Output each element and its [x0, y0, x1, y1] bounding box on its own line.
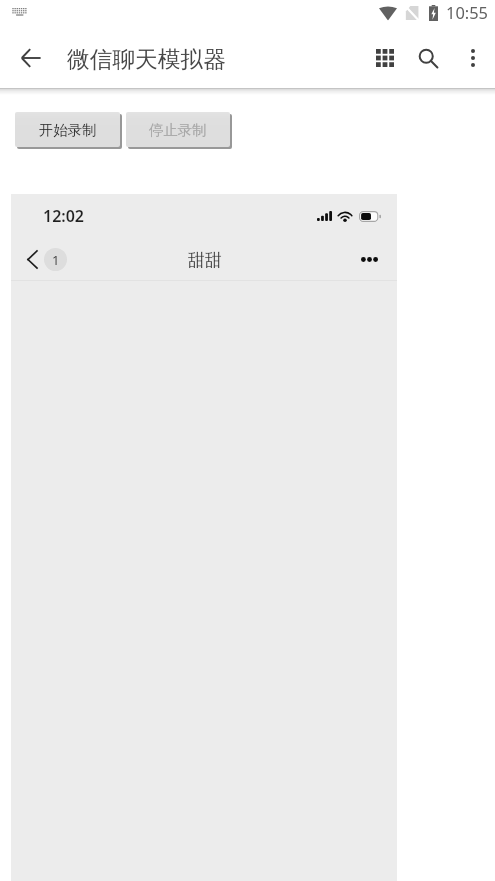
- staticText: 开始录制: [39, 121, 97, 139]
- staticText: 停止录制: [149, 121, 207, 139]
- button[interactable]: More options: [449, 34, 495, 82]
- button[interactable]: Search: [404, 34, 452, 82]
- staticText: 1: [52, 251, 60, 269]
- button[interactable]: More: [348, 243, 390, 275]
- button[interactable]: Back: [7, 34, 55, 82]
- button[interactable]: 停止录制: [126, 112, 230, 147]
- staticText: 12:02: [43, 205, 85, 227]
- staticText: 微信聊天模拟器: [67, 45, 226, 74]
- button[interactable]: Apps: [361, 34, 409, 82]
- staticText: 甜甜: [188, 250, 222, 271]
- button[interactable]: Back: [25, 245, 67, 273]
- button[interactable]: 开始录制: [15, 112, 120, 147]
- staticText: 10:55: [446, 1, 488, 23]
